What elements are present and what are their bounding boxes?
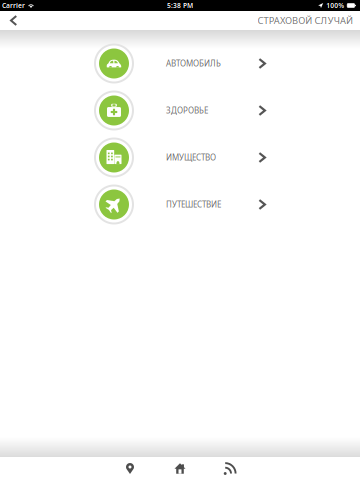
staticText: ЗДОРОВЬЕ: [166, 105, 208, 116]
button[interactable]: News: [205, 457, 255, 480]
staticText: 5:38 PM: [167, 1, 193, 10]
button[interactable]: ПУТЕШЕСТВИЕ: [0, 181, 360, 228]
staticText: ИМУЩЕСТВО: [166, 152, 216, 163]
staticText: СТРАХОВОЙ СЛУЧАЙ: [257, 14, 353, 27]
staticText: 100%: [326, 1, 344, 10]
button[interactable]: Home: [155, 457, 205, 480]
staticText: Carrier: [2, 1, 25, 10]
button[interactable]: ИМУЩЕСТВО: [0, 134, 360, 181]
button[interactable]: Back: [0, 11, 33, 30]
button[interactable]: АВТОМОБИЛЬ: [0, 40, 360, 87]
button[interactable]: Map: [105, 457, 155, 480]
staticText: ПУТЕШЕСТВИЕ: [166, 199, 221, 210]
button[interactable]: ЗДОРОВЬЕ: [0, 87, 360, 134]
staticText: АВТОМОБИЛЬ: [166, 58, 221, 69]
